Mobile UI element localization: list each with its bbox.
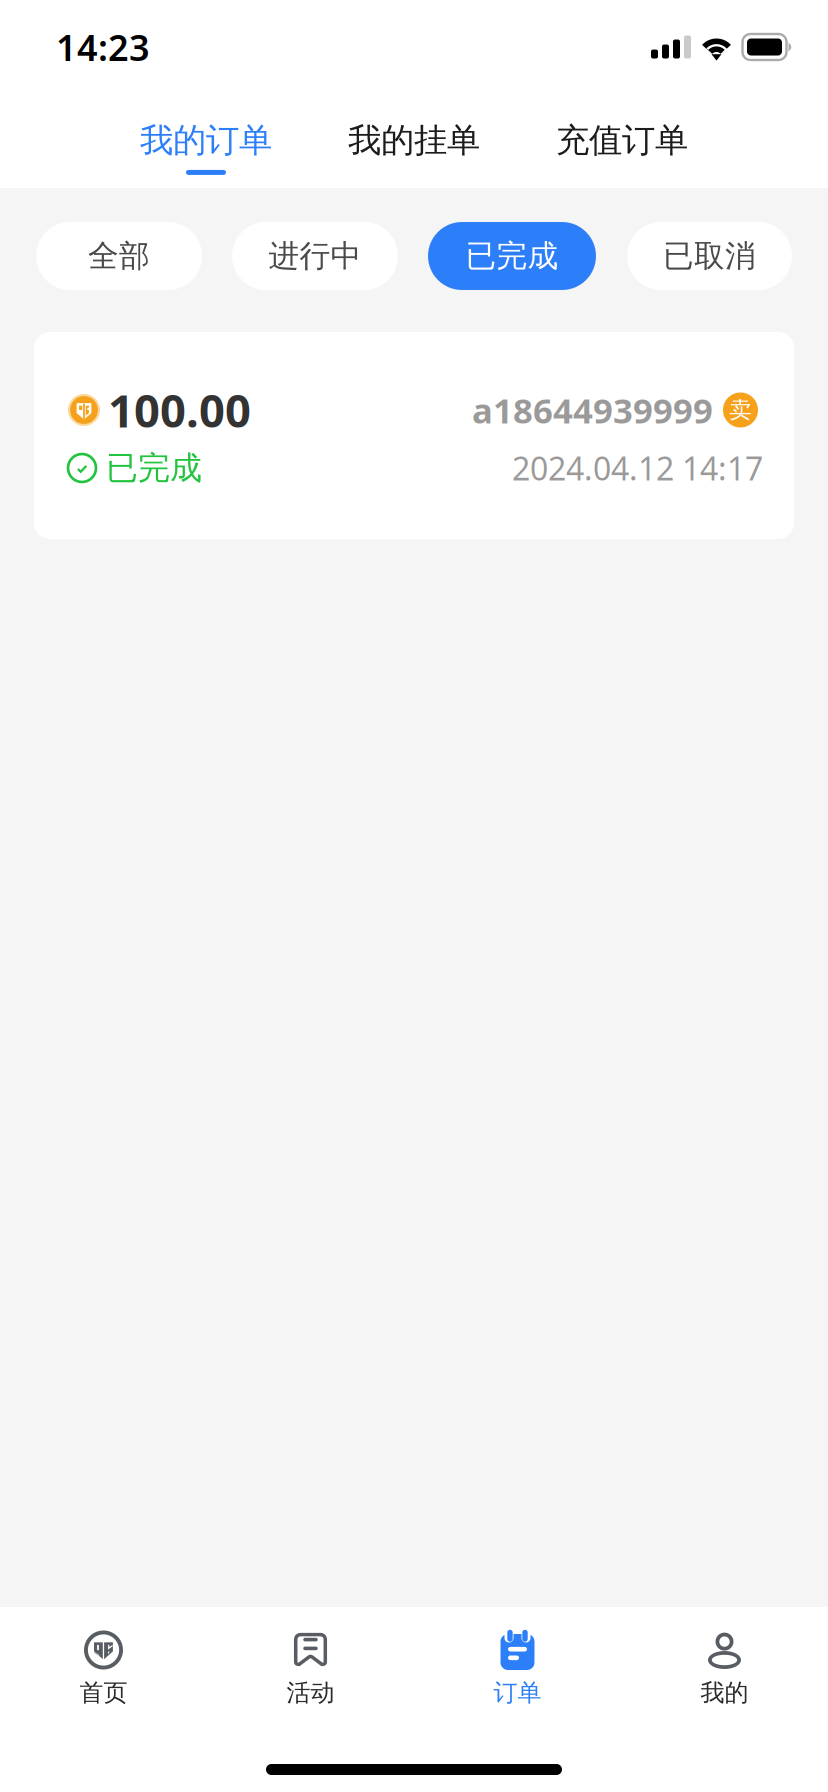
staticText: 已完成 xyxy=(106,448,202,488)
button[interactable]: 已完成 xyxy=(428,222,596,290)
staticText: 我的挂单 xyxy=(348,120,480,161)
button[interactable]: 订单 xyxy=(414,1630,621,1734)
staticText: 卖 xyxy=(729,396,752,424)
staticText: 我的订单 xyxy=(140,120,272,161)
button[interactable]: 首页 xyxy=(0,1630,207,1734)
button[interactable]: 已取消 xyxy=(627,222,792,290)
staticText: 我的 xyxy=(700,1678,748,1707)
button[interactable]: 我的订单 xyxy=(102,94,310,188)
button[interactable]: 我的挂单 xyxy=(310,94,518,188)
staticText: 订单 xyxy=(493,1678,541,1707)
staticText: 全部 xyxy=(88,237,150,275)
staticText: 100.00 xyxy=(108,380,251,440)
staticText: 14:23 xyxy=(56,23,150,71)
staticText: 已完成 xyxy=(465,237,558,275)
staticText: 进行中 xyxy=(268,237,361,275)
button[interactable]: 活动 xyxy=(207,1630,414,1734)
staticText: 活动 xyxy=(286,1678,334,1707)
staticText: a18644939999 xyxy=(472,387,713,433)
staticText: 充值订单 xyxy=(556,120,688,161)
button[interactable]: 进行中 xyxy=(232,222,398,290)
staticText: 已取消 xyxy=(663,237,756,275)
staticText: 首页 xyxy=(79,1678,127,1707)
button[interactable]: 100.00 xyxy=(34,332,794,539)
button[interactable]: 充值订单 xyxy=(518,94,726,188)
button[interactable]: 我的 xyxy=(621,1630,828,1734)
button[interactable]: 全部 xyxy=(36,222,202,290)
staticText: 2024.04.12 14:17 xyxy=(512,447,763,489)
